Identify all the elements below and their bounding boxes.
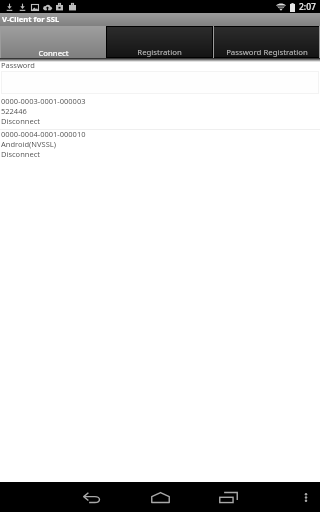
button[interactable]: More options bbox=[292, 487, 320, 507]
staticText: Android(NVSSL) bbox=[1, 139, 56, 149]
button[interactable]: 0000-0004-0001-000010 bbox=[0, 129, 320, 160]
staticText: 0000-0003-0001-000003 bbox=[1, 96, 86, 106]
staticText: 0000-0004-0001-000010 bbox=[1, 129, 86, 139]
staticText: Connect bbox=[38, 48, 69, 59]
button[interactable]: 0000-0003-0001-000003 bbox=[0, 96, 320, 127]
button[interactable]: Password Registration bbox=[214, 27, 319, 57]
staticText: Disconnect bbox=[1, 149, 40, 159]
staticText: Password Registration bbox=[226, 47, 308, 58]
staticText: V-Client for SSL bbox=[2, 14, 60, 24]
button[interactable]: Registration bbox=[107, 27, 212, 57]
button[interactable]: Recent apps bbox=[208, 487, 248, 507]
staticText: Registration bbox=[137, 47, 182, 58]
staticText: 522446 bbox=[1, 106, 27, 116]
button[interactable]: Home bbox=[140, 487, 180, 507]
button[interactable]: Connect bbox=[0, 26, 106, 58]
staticText: Disconnect bbox=[1, 116, 40, 126]
staticText: Password bbox=[1, 60, 35, 70]
staticText: 2:07 bbox=[299, 1, 316, 13]
button[interactable] bbox=[1, 71, 319, 94]
button[interactable]: Back bbox=[72, 487, 112, 507]
